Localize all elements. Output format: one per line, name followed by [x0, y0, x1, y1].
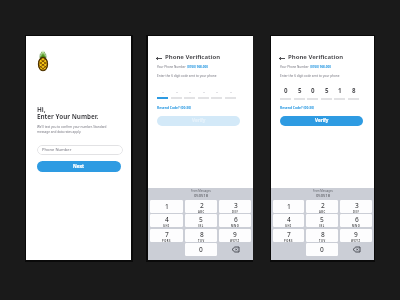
- staticText: DEF: [232, 210, 239, 213]
- staticText: We'll text you to confirm your number. S…: [37, 125, 107, 134]
- button[interactable]: Resend Code? (00:30): [280, 105, 315, 109]
- button[interactable]: 5: [321, 86, 332, 100]
- staticText: 2: [321, 201, 325, 210]
- staticText: From Messages: [313, 189, 333, 193]
- staticText: MNO: [231, 224, 240, 227]
- button[interactable]: Delete: [340, 243, 372, 256]
- button[interactable]: 7: [273, 229, 304, 242]
- button[interactable]: Delete: [219, 243, 251, 256]
- staticText: 4: [165, 215, 169, 224]
- button[interactable]: 1: [273, 200, 304, 213]
- staticText: 1: [287, 202, 291, 211]
- staticText: (0760) 968-000: [310, 65, 331, 69]
- button[interactable]: 9: [340, 229, 372, 242]
- button[interactable]: 4: [273, 214, 304, 227]
- staticText: 3: [234, 201, 238, 210]
- staticText: DEF: [353, 210, 360, 213]
- button[interactable]: 0: [280, 86, 291, 100]
- staticText: Enter the 6 digit code sent to your phon…: [280, 74, 340, 78]
- button[interactable]: Phone Number: [37, 145, 123, 155]
- staticText: Next: [73, 163, 85, 169]
- staticText: MNO: [352, 224, 361, 227]
- staticText: 6: [355, 215, 359, 224]
- staticText: Phone Verification: [165, 53, 221, 61]
- button[interactable]: Back: [278, 56, 286, 61]
- button[interactable]: 0: [185, 243, 217, 256]
- staticText: Verify: [192, 117, 206, 123]
- staticText: 6: [234, 215, 238, 224]
- staticText: 1: [165, 202, 169, 211]
- staticText: From Messages: [191, 189, 211, 193]
- button[interactable]: 9: [219, 229, 251, 242]
- button[interactable]: 1: [334, 86, 345, 100]
- button[interactable]: 8: [306, 229, 338, 242]
- staticText: 5: [320, 215, 324, 224]
- button[interactable]: [184, 86, 195, 99]
- staticText: TUV: [319, 239, 326, 242]
- button[interactable]: 6: [340, 214, 372, 227]
- staticText: Your Phone Number: [280, 65, 310, 69]
- button[interactable]: 8: [185, 229, 217, 242]
- button[interactable]: 4: [150, 214, 183, 227]
- button[interactable]: 6: [219, 214, 251, 227]
- button[interactable]: 5: [185, 214, 217, 227]
- button[interactable]: 1: [150, 200, 183, 213]
- staticText: ABC: [319, 210, 326, 213]
- button[interactable]: Resend Code? (00:30): [157, 105, 192, 109]
- staticText: 8: [321, 230, 325, 239]
- button[interactable]: Verify: [280, 116, 363, 126]
- staticText: Enter the 6 digit code sent to your phon…: [157, 74, 217, 78]
- staticText: 8: [200, 230, 204, 239]
- staticText: Phone Number: [42, 147, 72, 153]
- button[interactable]: 5: [306, 214, 338, 227]
- staticText: 050518: [194, 193, 209, 199]
- button[interactable]: 5: [294, 86, 305, 100]
- staticText: JKL: [198, 224, 204, 227]
- staticText: JKL: [319, 224, 325, 227]
- staticText: 1: [338, 86, 342, 94]
- staticText: GHI: [285, 224, 292, 227]
- button[interactable]: Next: [37, 161, 121, 172]
- button[interactable]: 3: [340, 200, 372, 213]
- staticText: 5: [325, 86, 329, 94]
- staticText: Hi, Enter Your Number.: [37, 105, 99, 121]
- staticText: ABC: [198, 210, 205, 213]
- button[interactable]: [225, 86, 236, 99]
- button[interactable]: 0: [306, 243, 338, 256]
- button[interactable]: [211, 86, 222, 99]
- staticText: Resend Code? (00:30): [280, 105, 315, 109]
- button[interactable]: Back: [155, 56, 163, 61]
- button[interactable]: 8: [348, 86, 359, 100]
- staticText: 7: [287, 230, 291, 239]
- button[interactable]: [171, 86, 182, 99]
- button[interactable]: [198, 86, 209, 99]
- button[interactable]: 7: [150, 229, 183, 242]
- staticText: WXYZ: [351, 239, 361, 242]
- staticText: TUV: [198, 239, 205, 242]
- button[interactable]: 0: [307, 86, 318, 100]
- staticText: 9: [354, 230, 358, 239]
- staticText: 050518: [316, 193, 331, 199]
- staticText: WXYZ: [230, 239, 240, 242]
- staticText: 5: [298, 86, 302, 94]
- staticText: 4: [287, 215, 291, 224]
- button[interactable]: [157, 86, 168, 99]
- button[interactable]: 2: [306, 200, 338, 213]
- staticText: Your Phone Number: [157, 65, 187, 69]
- staticText: 8: [352, 86, 356, 94]
- staticText: 0: [284, 86, 288, 94]
- staticText: 2: [200, 201, 204, 210]
- staticText: PQRS: [162, 239, 171, 242]
- staticText: 0: [320, 245, 324, 254]
- staticText: Phone Verification: [288, 53, 344, 61]
- button[interactable]: 3: [219, 200, 251, 213]
- staticText: 5: [199, 215, 203, 224]
- button[interactable]: Verify: [157, 116, 240, 126]
- staticText: PQRS: [284, 239, 293, 242]
- staticText: 3: [355, 201, 359, 210]
- staticText: 0: [199, 245, 203, 254]
- staticText: 7: [165, 230, 169, 239]
- staticText: (0760) 968-000: [187, 65, 208, 69]
- button[interactable]: 2: [185, 200, 217, 213]
- staticText: 0: [311, 86, 315, 94]
